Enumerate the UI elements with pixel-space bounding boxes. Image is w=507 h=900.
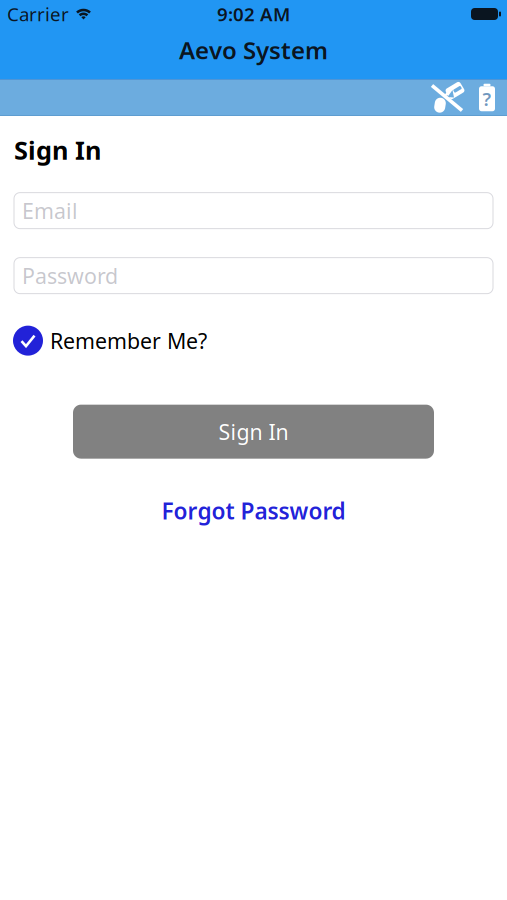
staticText: Remember Me? xyxy=(50,326,207,355)
button[interactable]: Scanner disconnected xyxy=(430,81,466,113)
button[interactable]: Sign In xyxy=(73,405,434,459)
button[interactable]: Forgot Password xyxy=(161,496,345,526)
staticText: Sign In xyxy=(14,133,101,167)
staticText: ? xyxy=(482,86,491,111)
staticText: Aevo System xyxy=(179,34,328,66)
staticText: Forgot Password xyxy=(161,496,345,526)
staticText: 9:02 AM xyxy=(217,2,290,26)
staticText: Carrier xyxy=(7,2,69,26)
button[interactable]: Scanner battery unknown xyxy=(479,84,495,111)
staticText: Password xyxy=(22,261,118,290)
button[interactable]: Remember Me? xyxy=(0,326,207,356)
staticText: Sign In xyxy=(218,417,288,446)
staticText: Email xyxy=(22,196,78,225)
